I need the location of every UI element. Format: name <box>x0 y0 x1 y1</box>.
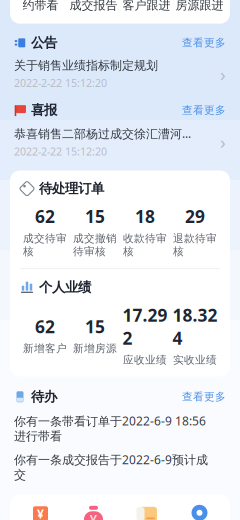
staticText: 客户跟进 <box>122 0 170 13</box>
staticText: 实收业绩 <box>173 353 217 367</box>
button[interactable]: 外出打卡 <box>173 503 226 520</box>
staticText: 成交报告 <box>69 0 117 13</box>
staticText: 查看更多 <box>182 390 226 403</box>
button[interactable]: 客户跟进 <box>120 0 173 15</box>
button[interactable]: 关于销售业绩指标制定规划 <box>14 58 226 90</box>
staticText: ¥ <box>37 506 44 520</box>
button[interactable]: 查看更多 <box>182 104 226 117</box>
staticText: 约带看 <box>22 0 58 13</box>
staticText: › <box>220 62 226 86</box>
staticText: 18 <box>135 205 155 228</box>
staticText: 退款待审核 <box>173 232 217 258</box>
staticText: 成交待审核 <box>23 232 67 258</box>
staticText: 查看更多 <box>182 36 226 49</box>
button[interactable]: ¥ <box>67 503 120 520</box>
staticText: 新增客户 <box>23 342 67 355</box>
button[interactable]: 日报 <box>120 503 173 520</box>
staticText: 2022-2-22 15:12:20 <box>14 76 107 90</box>
staticText: 成交撤销待审核 <box>73 232 117 258</box>
staticText: 62 <box>35 205 55 228</box>
staticText: 公告 <box>31 35 57 51</box>
staticText: › <box>220 129 226 154</box>
staticText: 房源跟进 <box>175 0 223 13</box>
staticText: 待办 <box>31 389 57 405</box>
staticText: 恭喜销售二部杨过成交徐汇漕河泾整租汇通公寓… <box>14 125 200 141</box>
button[interactable]: 恭喜销售二部杨过成交徐汇漕河泾整租汇通公寓… <box>14 125 226 158</box>
staticText: 17.292 <box>122 303 167 349</box>
staticText: 关于销售业绩指标制定规划 <box>14 58 158 73</box>
staticText: 喜报 <box>31 102 57 118</box>
staticText: 收款待审核 <box>123 232 167 258</box>
button[interactable]: 约带看 <box>14 0 67 15</box>
staticText: 个人业绩 <box>39 279 91 295</box>
button[interactable]: ¥ <box>14 503 67 520</box>
staticText: 应收业绩 <box>123 353 167 367</box>
staticText: ¥ <box>89 511 97 520</box>
staticText: 你有一条成交报告于2022-6-9预计成交 <box>14 452 208 482</box>
button[interactable]: 成交报告 <box>67 0 120 15</box>
button[interactable]: 查看更多 <box>182 390 226 403</box>
button[interactable]: 房源跟进 <box>173 0 226 15</box>
staticText: 你有一条带看订单于2022-6-9 18:56进行带看 <box>14 413 206 444</box>
staticText: 29 <box>185 205 205 228</box>
staticText: 15 <box>85 315 105 338</box>
button[interactable]: 查看更多 <box>182 36 226 49</box>
staticText: 18.324 <box>172 303 217 349</box>
staticText: 待处理订单 <box>39 180 104 197</box>
button[interactable]: 你有一条带看订单于2022-6-9 18:56进行带看 <box>14 413 226 444</box>
staticText: 查看更多 <box>182 104 226 117</box>
staticText: 新增房源 <box>73 342 117 355</box>
button[interactable]: 你有一条成交报告于2022-6-9预计成交 <box>14 452 226 482</box>
staticText: 15 <box>85 205 105 228</box>
staticText: 2022-2-22 15:12:20 <box>14 144 107 158</box>
staticText: 62 <box>35 315 55 338</box>
